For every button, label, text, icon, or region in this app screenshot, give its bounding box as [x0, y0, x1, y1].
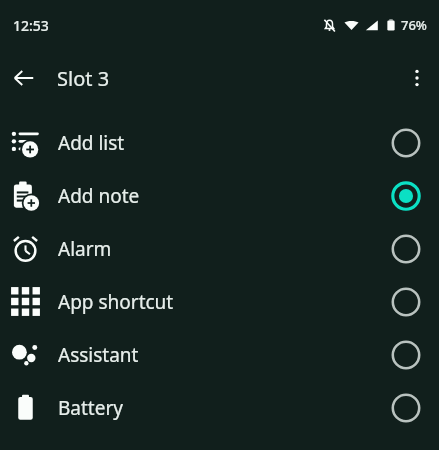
button[interactable]: Add list: [0, 116, 439, 169]
button[interactable]: [384, 121, 428, 165]
staticText: 76%: [401, 16, 427, 34]
staticText: Assistant: [58, 342, 139, 368]
staticText: Add list: [58, 130, 125, 156]
button[interactable]: Back: [5, 59, 43, 97]
button[interactable]: [384, 386, 428, 430]
staticText: 12:53: [13, 16, 49, 35]
button[interactable]: [384, 280, 428, 324]
button[interactable]: [384, 227, 428, 271]
button[interactable]: [384, 333, 428, 377]
staticText: Battery: [58, 395, 123, 421]
button[interactable]: [384, 174, 428, 218]
button[interactable]: Battery: [0, 381, 439, 434]
staticText: App shortcut: [58, 289, 174, 315]
button[interactable]: Assistant: [0, 328, 439, 381]
staticText: Add note: [58, 183, 140, 209]
button[interactable]: Alarm: [0, 222, 439, 275]
button[interactable]: More options: [398, 59, 436, 97]
button[interactable]: App shortcut: [0, 275, 439, 328]
staticText: Slot 3: [57, 65, 110, 92]
staticText: Alarm: [58, 236, 112, 262]
button[interactable]: Add note: [0, 169, 439, 222]
